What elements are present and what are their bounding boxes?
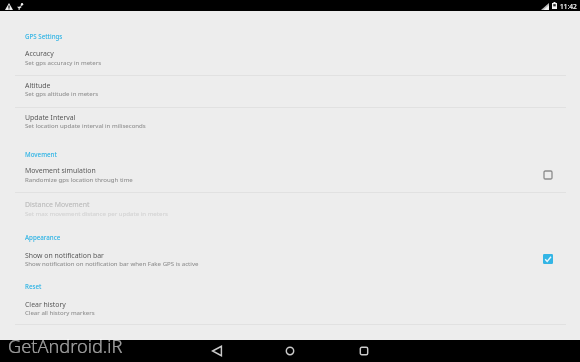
staticText: Accuracy bbox=[25, 49, 54, 58]
staticText: Reset bbox=[25, 282, 42, 290]
button[interactable]: Clear history bbox=[0, 296, 580, 327]
button[interactable]: Accuracy bbox=[0, 45, 580, 76]
staticText: 11:42 bbox=[560, 2, 577, 11]
staticText: Show on notification bar bbox=[25, 251, 104, 260]
staticText: GetAndroid.iR bbox=[8, 334, 123, 359]
other: Warning notification bbox=[5, 3, 13, 10]
staticText: Distance Movement bbox=[25, 200, 90, 209]
button[interactable]: Movement simulation bbox=[0, 162, 580, 193]
staticText: Clear history bbox=[25, 300, 66, 309]
button[interactable]: Show on notification bar bbox=[0, 247, 580, 278]
staticText: GPS Settings bbox=[25, 32, 63, 40]
staticText: Update Interval bbox=[25, 113, 76, 122]
staticText: Show notification on notification bar wh… bbox=[25, 259, 199, 267]
staticText: Randomize gps location through time bbox=[25, 175, 133, 183]
staticText: Altitude bbox=[25, 81, 51, 90]
staticText: Movement bbox=[25, 150, 57, 158]
button[interactable]: Show on notification bar checkbox bbox=[539, 250, 557, 268]
staticText: Clear all history markers bbox=[25, 308, 95, 316]
button[interactable]: Home bbox=[270, 340, 310, 362]
other: GPS active bbox=[17, 3, 24, 10]
staticText: Set gps accuracy in meters bbox=[25, 58, 102, 66]
staticText: Set gps altitude in meters bbox=[25, 89, 99, 97]
other: Distance Movement bbox=[0, 196, 580, 227]
staticText: Set max movement distance per update in … bbox=[25, 209, 168, 217]
staticText: Appearance bbox=[25, 233, 61, 241]
staticText: Set location update interval in miliseco… bbox=[25, 121, 146, 129]
other: Battery bbox=[552, 2, 557, 9]
button[interactable]: Movement simulation checkbox bbox=[539, 166, 557, 184]
staticText: Movement simulation bbox=[25, 166, 96, 175]
button[interactable]: Recent apps bbox=[344, 340, 384, 362]
button[interactable]: Back bbox=[197, 340, 237, 362]
button[interactable]: Update Interval bbox=[0, 109, 580, 140]
button[interactable]: Altitude bbox=[0, 77, 580, 108]
other: Mobile signal bbox=[541, 3, 549, 10]
